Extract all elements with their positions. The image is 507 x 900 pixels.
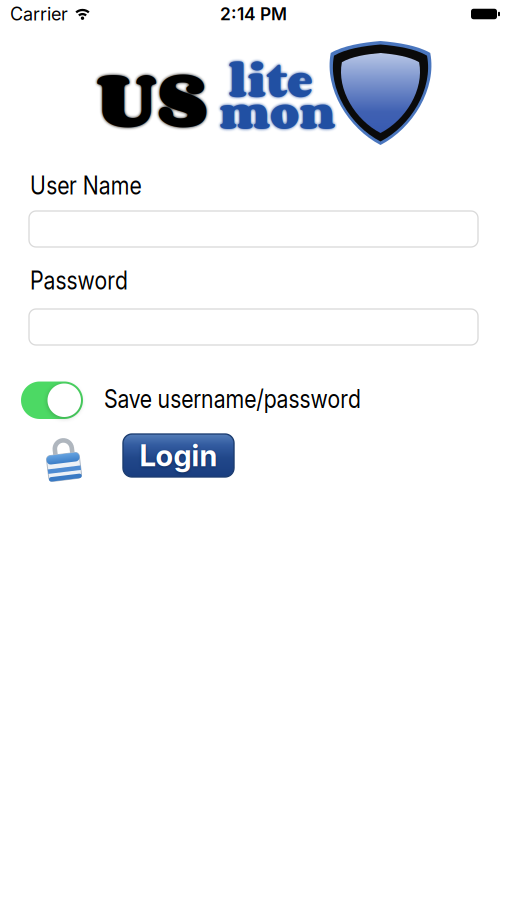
button[interactable]: Login: [123, 434, 234, 477]
button[interactable]: Save username/password: [21, 381, 83, 419]
staticText: lite: [228, 44, 312, 116]
staticText: Password: [30, 265, 145, 296]
staticText: Carrier: [10, 3, 68, 25]
staticText: Login: [139, 438, 217, 473]
button[interactable]: User Name: [29, 211, 478, 247]
staticText: Save username/password: [104, 383, 406, 414]
staticText: 2:14 PM: [220, 3, 287, 24]
staticText: mon: [219, 76, 335, 147]
staticText: US: [96, 34, 208, 158]
staticText: User Name: [30, 170, 161, 201]
button[interactable]: Password: [29, 309, 478, 345]
